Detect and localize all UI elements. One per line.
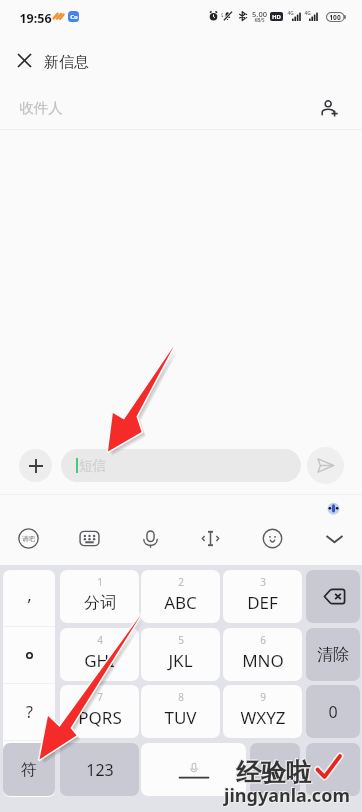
button[interactable]: Language (10, 524, 46, 553)
staticText: 经验啦 (235, 756, 310, 787)
staticText: ? (26, 701, 33, 723)
button[interactable]: ! (3, 741, 55, 797)
button[interactable]: 0 (306, 685, 360, 738)
staticText: 7 (97, 690, 103, 704)
button[interactable]: , (3, 570, 55, 626)
button[interactable]: Hide keyboard (316, 524, 352, 553)
button[interactable]: 清除 (306, 628, 360, 681)
button[interactable]: Send (307, 447, 344, 484)
staticText: 8 (178, 690, 184, 704)
button[interactable] (3, 627, 55, 683)
button[interactable]: 4 (60, 628, 139, 681)
staticText: jingyanla.com (225, 784, 351, 809)
staticText: 分词 (84, 593, 116, 613)
staticText: 。, (266, 760, 284, 779)
button[interactable]: 5 (141, 628, 220, 681)
button[interactable]: 6 (223, 628, 302, 681)
button[interactable]: 2 (141, 570, 220, 623)
staticText: GHI (84, 649, 115, 672)
staticText: 清除 (317, 645, 349, 665)
staticText: 收件人 (19, 99, 63, 117)
staticText: 经验啦 (236, 757, 311, 788)
button[interactable]: Add contact (316, 95, 342, 121)
staticText: PQRS (78, 706, 122, 729)
staticText: 符 (21, 760, 37, 780)
staticText: 19:56 (19, 10, 52, 27)
button[interactable]: Move cursor (192, 524, 228, 553)
staticText: 0 (328, 701, 338, 723)
button[interactable]: 短信 (61, 449, 301, 482)
staticText: 6 (260, 633, 266, 647)
staticText: 123 (86, 759, 114, 781)
button[interactable]: Emoji (254, 524, 290, 553)
staticText: 4G (304, 10, 311, 17)
staticText: Co (70, 13, 78, 21)
button[interactable]: 1 (60, 570, 139, 623)
staticText: 短信 (79, 457, 106, 474)
staticText: 9 (260, 690, 266, 704)
staticText: jingyanla.com (224, 783, 350, 808)
staticText: 4G (287, 10, 294, 17)
staticText: jingyanla.com (223, 782, 349, 807)
staticText: HD (272, 13, 281, 21)
staticText: 100 (329, 13, 341, 22)
staticText: 3 (260, 575, 266, 589)
button[interactable]: Space (141, 743, 246, 796)
staticText: 新信息 (44, 53, 89, 72)
button[interactable]: Enter (306, 743, 360, 796)
button[interactable]: Add attachment (19, 449, 52, 482)
staticText: KB/S (254, 17, 265, 23)
button[interactable]: 。, (250, 743, 300, 796)
button[interactable]: 123 (60, 743, 139, 796)
staticText: DEF (247, 591, 278, 614)
staticText: 请吧 (22, 535, 35, 543)
staticText: ABC (164, 591, 197, 614)
staticText: 4 (97, 633, 103, 647)
staticText: 5 (178, 633, 184, 647)
button[interactable]: 符 (3, 743, 55, 796)
button[interactable]: ? (3, 684, 55, 740)
staticText: ! (27, 758, 32, 780)
button[interactable]: 9 (223, 685, 302, 738)
staticText: MNO (242, 649, 284, 672)
staticText: , (27, 583, 32, 606)
button[interactable]: 7 (60, 685, 139, 738)
button[interactable]: Close (4, 40, 44, 80)
staticText: TUV (164, 706, 197, 729)
button[interactable]: 3 (223, 570, 302, 623)
button[interactable]: Delete (306, 570, 360, 623)
staticText: 经验啦 (237, 758, 312, 789)
button[interactable]: Keyboard layout (71, 524, 107, 553)
staticText: 2 (178, 575, 184, 589)
button[interactable]: 8 (141, 685, 220, 738)
button[interactable]: Voice input (132, 524, 168, 553)
staticText: 1 (97, 575, 103, 589)
staticText: WXYZ (240, 706, 286, 729)
staticText: JKL (168, 649, 193, 672)
staticText: 5.00 (252, 9, 267, 19)
